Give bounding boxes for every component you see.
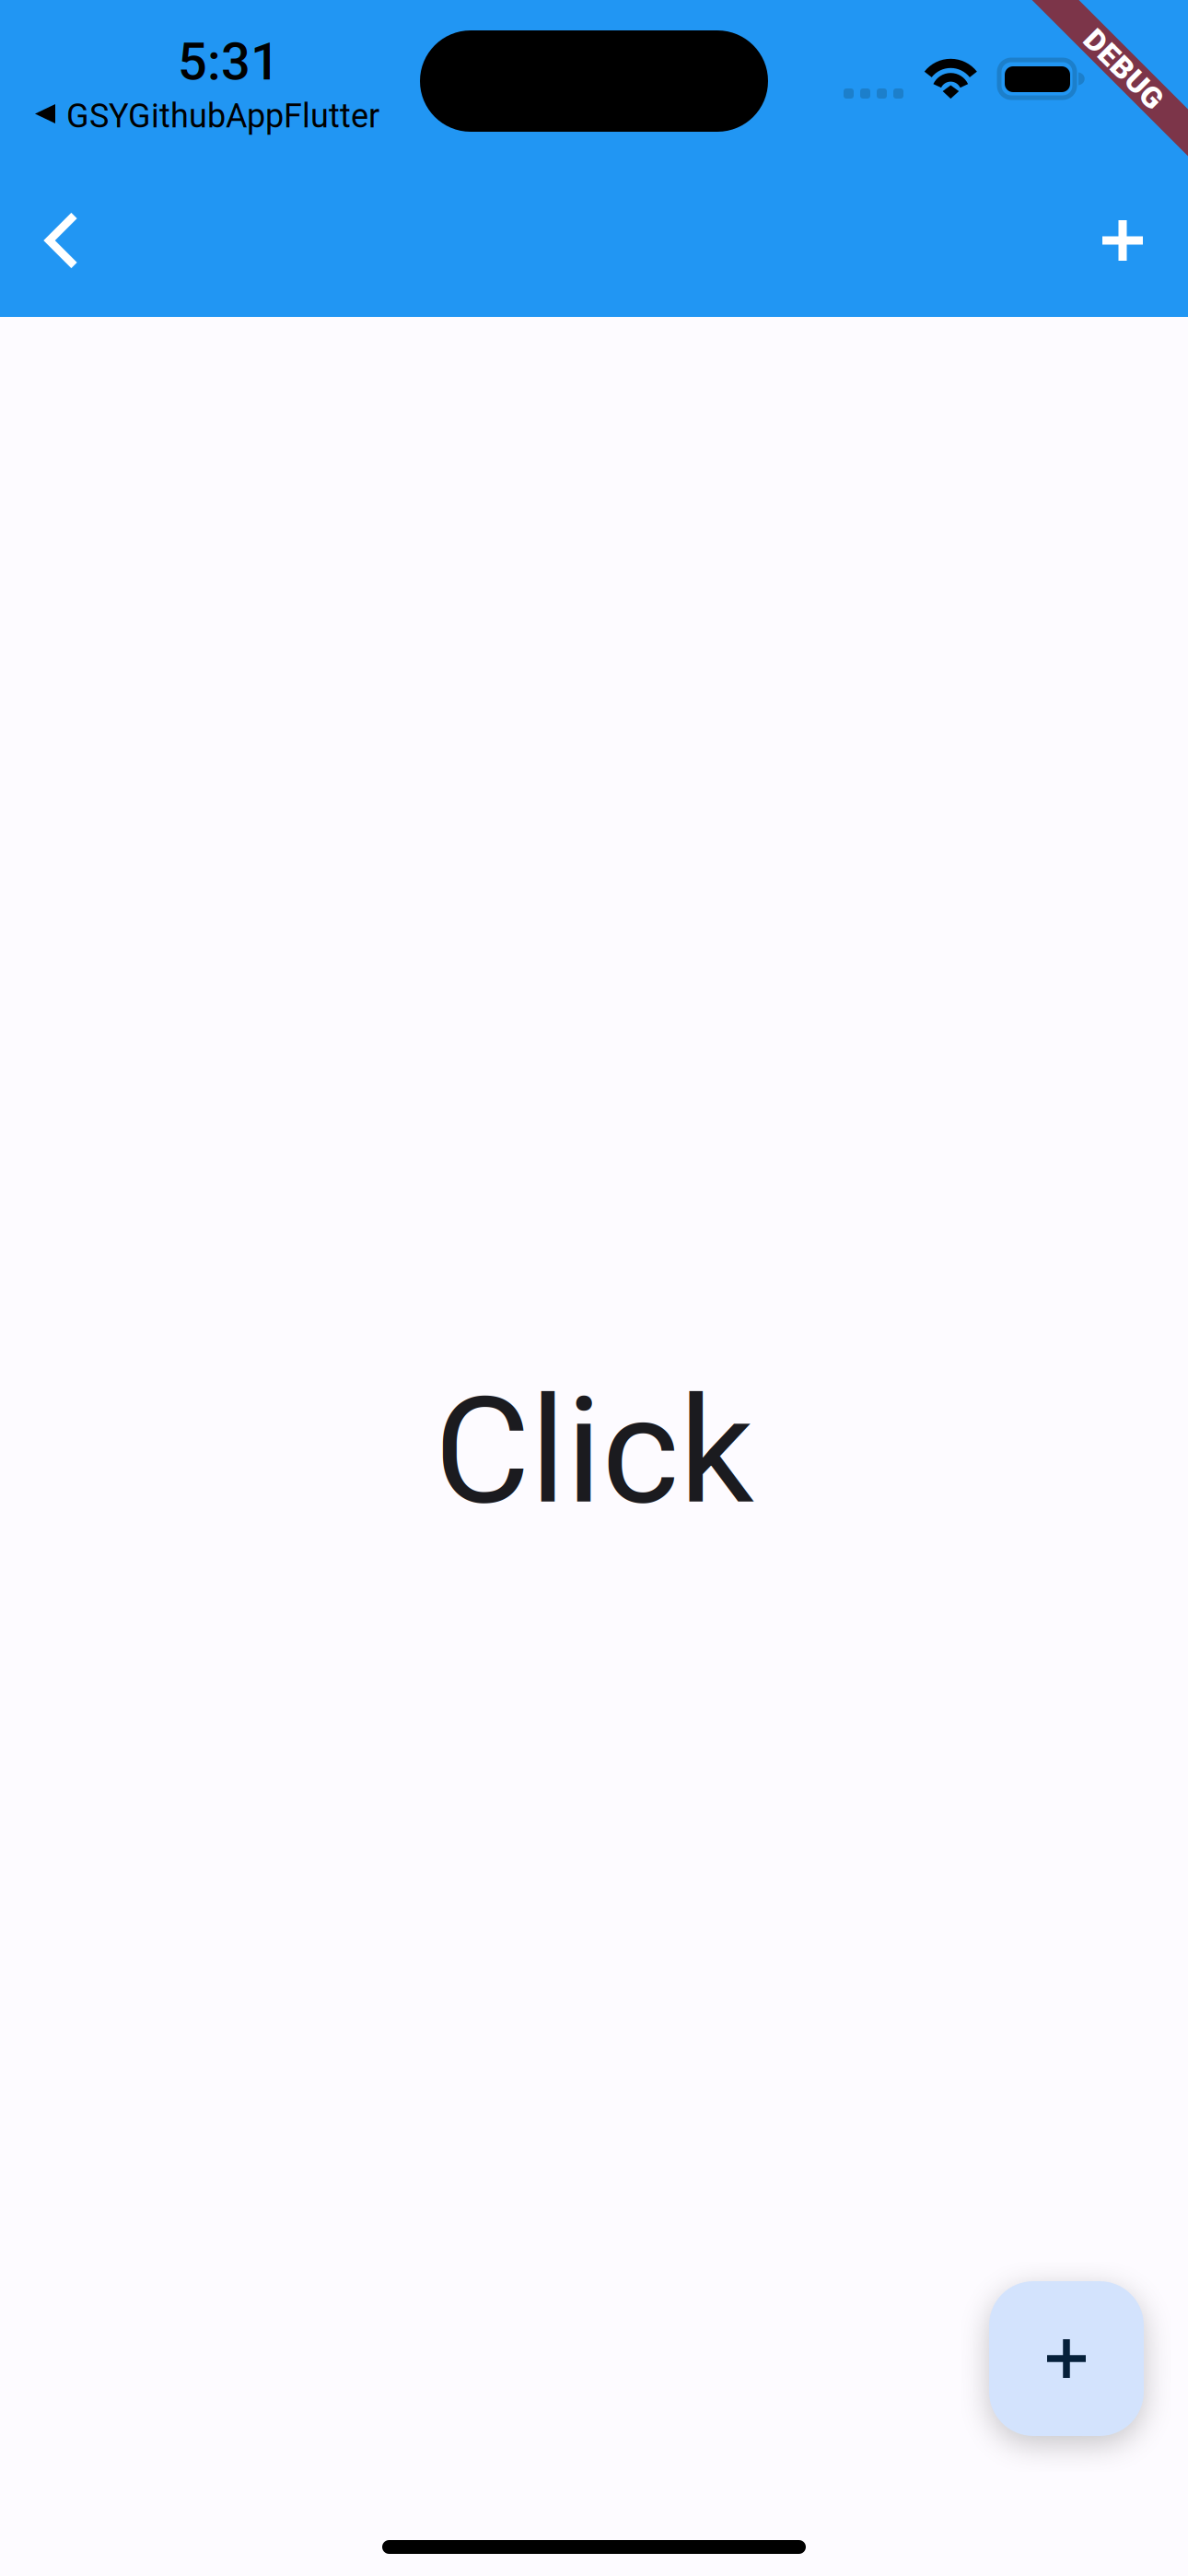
staticText: GSYGithubAppFlutter [66, 97, 379, 136]
button[interactable]: Add [989, 2281, 1144, 2436]
button[interactable]: Click [410, 1382, 778, 1520]
staticText: Click [434, 1365, 754, 1537]
staticText: DEBUG [1076, 49, 1175, 85]
button[interactable]: Add [1072, 190, 1173, 291]
staticText: 5:31 [178, 32, 280, 92]
button[interactable]: Back [11, 190, 112, 291]
